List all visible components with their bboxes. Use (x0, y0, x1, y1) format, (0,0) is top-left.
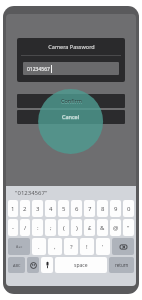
staticText: : (37, 224, 39, 232)
staticText: ? (70, 243, 73, 251)
staticText: 5 (62, 205, 66, 213)
button[interactable]: 4 (45, 200, 56, 217)
button[interactable]: 3 (32, 200, 43, 217)
button[interactable]: ' (96, 238, 110, 255)
button[interactable]: return (109, 257, 134, 273)
staticText: 7 (88, 205, 92, 213)
staticText: Camera Password (48, 43, 95, 50)
button[interactable]: ; (45, 219, 56, 236)
staticText: 3 (36, 205, 40, 213)
staticText: / (24, 224, 27, 232)
staticText: - (12, 224, 14, 232)
button[interactable]: / (20, 219, 30, 236)
staticText: Cancel (62, 114, 80, 121)
staticText: ) (76, 224, 78, 232)
button[interactable]: £ (84, 219, 95, 236)
staticText: return (115, 262, 129, 268)
staticText: 1 (11, 205, 15, 213)
staticText: 9 (114, 205, 118, 213)
button[interactable]: Emoji (27, 257, 39, 273)
staticText: ( (63, 224, 65, 232)
button[interactable]: Symbols (8, 238, 30, 255)
staticText: 8 (101, 205, 105, 213)
staticText: , (54, 243, 56, 251)
button[interactable]: 6 (71, 200, 82, 217)
button[interactable]: ( (58, 219, 69, 236)
button[interactable]: - (8, 219, 18, 236)
button[interactable]: . (32, 238, 46, 255)
button[interactable]: , (48, 238, 62, 255)
staticText: 4 (49, 205, 53, 213)
button[interactable]: Cancel (17, 110, 125, 124)
staticText: ' (102, 243, 104, 251)
button[interactable]: " (123, 219, 134, 236)
staticText: Confirm (61, 97, 82, 104)
staticText: "01234567" (15, 189, 48, 197)
button[interactable]: 8 (97, 200, 108, 217)
button[interactable]: Backspace (112, 238, 134, 255)
button[interactable]: Voice input (41, 257, 53, 273)
staticText: @ (113, 224, 119, 232)
button[interactable]: 2 (20, 200, 30, 217)
button[interactable]: Confirm (17, 94, 125, 108)
button[interactable]: ? (64, 238, 78, 255)
staticText: Confirm (61, 98, 82, 105)
staticText: ABC (13, 263, 21, 268)
button[interactable]: @ (110, 219, 121, 236)
staticText: Cancel (62, 113, 80, 120)
button[interactable]: ABC (8, 257, 25, 273)
button[interactable]: 7 (84, 200, 95, 217)
staticText: space (74, 262, 88, 269)
staticText: ! (86, 243, 88, 251)
staticText: 2 (23, 205, 27, 213)
staticText: 0 (127, 205, 131, 213)
staticText: " (127, 224, 130, 232)
button[interactable]: 1 (8, 200, 18, 217)
staticText: #+= (16, 244, 23, 249)
staticText: & (100, 224, 105, 232)
button[interactable]: "01234567" (6, 186, 136, 199)
button[interactable]: 5 (58, 200, 69, 217)
button[interactable]: ) (71, 219, 82, 236)
button[interactable]: : (32, 219, 43, 236)
button[interactable]: ! (80, 238, 94, 255)
button[interactable]: 01234567 (23, 62, 119, 75)
button[interactable]: 9 (110, 200, 121, 217)
button[interactable]: & (97, 219, 108, 236)
staticText: ; (50, 224, 52, 232)
button[interactable]: 0 (123, 200, 134, 217)
staticText: . (38, 243, 40, 251)
staticText: £ (88, 224, 92, 232)
staticText: 01234567 (27, 66, 50, 73)
staticText: 6 (75, 205, 79, 213)
button[interactable]: space (55, 257, 107, 273)
